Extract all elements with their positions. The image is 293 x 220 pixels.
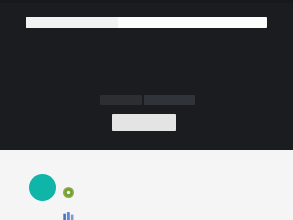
button[interactable]: Profile xyxy=(29,174,56,201)
button[interactable]: Primary action xyxy=(112,114,176,131)
button[interactable]: App icon xyxy=(62,211,75,220)
button[interactable] xyxy=(26,17,267,28)
button[interactable]: Verified badge xyxy=(63,187,74,198)
